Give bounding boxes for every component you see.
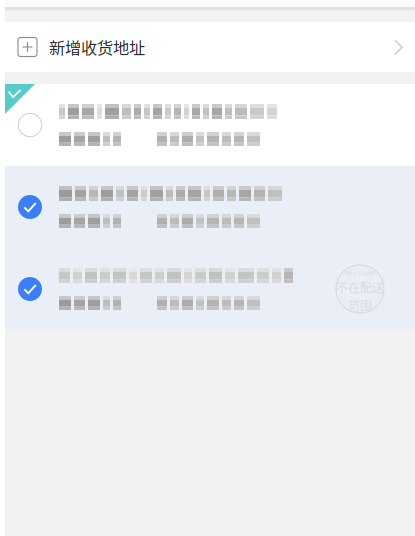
staticText: 新增收货地址 — [49, 35, 145, 59]
button[interactable]: 新增收货地址 — [5, 22, 415, 72]
staticText: 不在配送 — [336, 278, 384, 296]
staticText: MEI TUAN — [345, 270, 375, 277]
staticText: 范围 — [348, 297, 372, 314]
button[interactable]: MEI TUAN — [5, 248, 415, 330]
button[interactable] — [5, 166, 415, 248]
button[interactable] — [5, 84, 415, 166]
